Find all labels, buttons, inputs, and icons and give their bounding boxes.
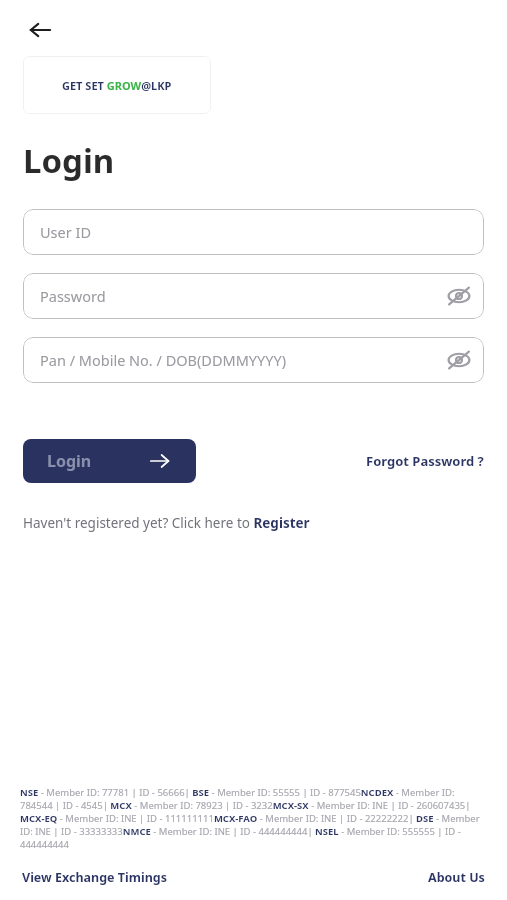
staticText: Haven't registered yet? Click here to Re… [23,514,310,532]
staticText: GET SET GROW@LKP [62,78,172,93]
staticText: Login [47,450,92,472]
staticText: View Exchange Timings [22,869,167,886]
button[interactable]: About Us [428,869,485,886]
button[interactable]: Back [18,8,62,52]
button[interactable]: Toggle secondary field visibility [446,347,472,373]
button[interactable]: Login [23,439,196,483]
staticText: Forgot Password ? [366,452,484,470]
button[interactable]: Password [23,273,484,319]
button[interactable]: Toggle password visibility [446,283,472,309]
button[interactable]: Haven't registered yet? Click here to Re… [23,514,310,532]
button[interactable]: Forgot Password ? [366,452,484,470]
button[interactable]: View Exchange Timings [22,869,167,886]
button[interactable]: Pan / Mobile No. / DOB(DDMMYYYY) [23,337,484,383]
staticText: Login [23,138,115,183]
staticText: User ID [40,222,91,242]
staticText: Pan / Mobile No. / DOB(DDMMYYYY) [40,350,287,370]
staticText: NSE - Member ID: 77781 | ID - 56666| BSE… [20,786,487,851]
button[interactable]: User ID [23,209,484,255]
staticText: About Us [428,869,485,886]
staticText: Password [40,286,106,306]
